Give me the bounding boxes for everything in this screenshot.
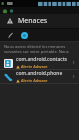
button[interactable]: Analyser xyxy=(5,30,15,40)
staticText: com.android.phone xyxy=(16,70,63,77)
staticText: Alerte Adware xyxy=(21,78,48,83)
button[interactable]: Menaces détectées xyxy=(0,14,79,28)
button[interactable]: com.android.phone xyxy=(0,70,79,83)
staticText: com.android.contacts xyxy=(16,56,67,63)
staticText: Menaces détectées xyxy=(18,16,79,26)
button[interactable]: Menaces xyxy=(19,30,29,40)
staticText: Nous avons détecté les menaces suivantes… xyxy=(4,44,75,54)
staticText: Alerte Adware xyxy=(21,64,48,69)
button[interactable]: com.android.contacts xyxy=(0,56,79,69)
